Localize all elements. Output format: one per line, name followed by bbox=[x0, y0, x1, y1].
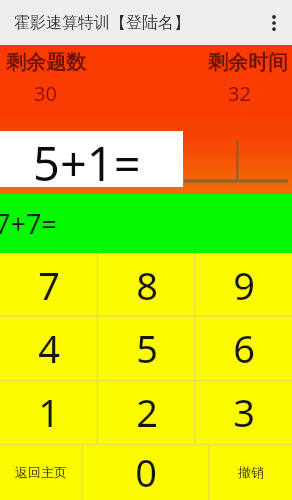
staticText: 5 bbox=[136, 322, 158, 374]
staticText: 2 bbox=[136, 386, 158, 438]
staticText: 9 bbox=[233, 259, 255, 311]
button[interactable]: 9 bbox=[195, 253, 292, 316]
button[interactable]: 8 bbox=[98, 253, 195, 316]
staticText: 5+1= bbox=[33, 131, 141, 187]
staticText: 返回主页 bbox=[15, 464, 67, 480]
staticText: 7 bbox=[38, 259, 60, 311]
staticText: 6 bbox=[233, 322, 255, 374]
staticText: 7+7= bbox=[0, 205, 57, 242]
button[interactable]: 0 bbox=[82, 444, 209, 500]
button[interactable]: 7 bbox=[0, 253, 98, 316]
button[interactable]: 返回主页 bbox=[0, 444, 82, 500]
staticText: 剩余题数 bbox=[6, 50, 86, 75]
staticText: 0 bbox=[135, 446, 157, 498]
button[interactable]: 4 bbox=[0, 316, 98, 380]
button[interactable]: 3 bbox=[195, 380, 292, 444]
button[interactable]: More options bbox=[254, 3, 292, 43]
staticText: 30 bbox=[34, 80, 57, 107]
staticText: 撤销 bbox=[238, 464, 264, 480]
button[interactable]: 5 bbox=[98, 316, 195, 380]
button[interactable]: 撤销 bbox=[209, 444, 292, 500]
button[interactable]: 2 bbox=[98, 380, 195, 444]
staticText: 3 bbox=[233, 386, 255, 438]
button[interactable]: 6 bbox=[195, 316, 292, 380]
button[interactable]: 1 bbox=[0, 380, 98, 444]
staticText: 剩余时间 bbox=[208, 50, 288, 75]
staticText: 8 bbox=[136, 259, 158, 311]
staticText: 4 bbox=[38, 322, 60, 374]
staticText: 霍影速算特训【登陆名】 bbox=[14, 13, 190, 33]
staticText: 1 bbox=[38, 386, 60, 438]
staticText: 32 bbox=[228, 80, 251, 107]
